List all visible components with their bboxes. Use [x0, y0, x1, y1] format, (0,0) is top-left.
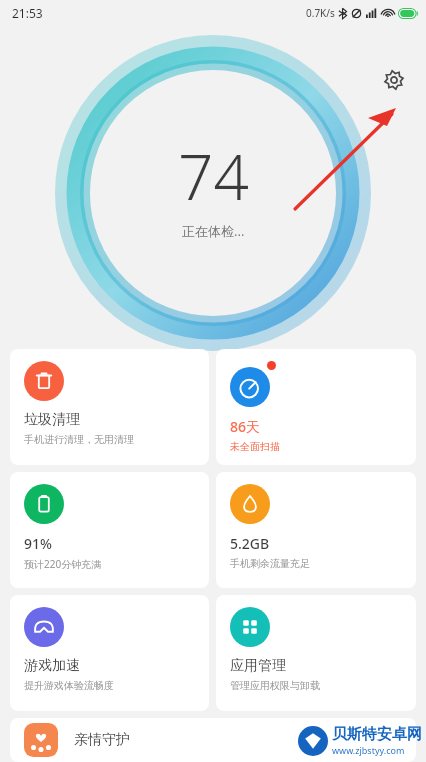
staticText: 垃圾清理: [24, 411, 80, 429]
staticText: 管理应用权限与卸载: [230, 679, 320, 692]
staticText: 5.2GB: [230, 534, 270, 553]
button[interactable]: 垃圾清理: [10, 349, 209, 465]
staticText: www.zjbstyy.com: [332, 744, 405, 756]
staticText: 91%: [24, 534, 52, 553]
button[interactable]: 应用管理: [216, 595, 416, 711]
staticText: 86天: [230, 417, 261, 436]
staticText: 未全面扫描: [230, 440, 280, 453]
staticText: 手机进行清理，无用清理: [24, 433, 134, 446]
staticText: 预计220分钟充满: [24, 557, 102, 571]
staticText: 贝斯特安卓网: [332, 725, 422, 744]
staticText: 游戏加速: [24, 657, 80, 675]
button[interactable]: 91%: [10, 472, 209, 588]
button[interactable]: 亲情守护: [10, 718, 416, 762]
button[interactable]: 游戏加速: [10, 595, 209, 711]
staticText: 手机剩余流量充足: [230, 557, 310, 570]
staticText: 21:53: [12, 5, 43, 21]
staticText: 74: [178, 134, 249, 218]
staticText: 提升游戏体验流畅度: [24, 679, 114, 692]
button[interactable]: Settings: [374, 60, 414, 100]
staticText: 应用管理: [230, 657, 286, 675]
staticText: 0.7K/s: [306, 6, 335, 20]
staticText: 正在体检...: [182, 222, 245, 240]
button[interactable]: 5.2GB: [216, 472, 416, 588]
staticText: 亲情守护: [74, 731, 130, 749]
button[interactable]: 86天: [216, 349, 416, 465]
